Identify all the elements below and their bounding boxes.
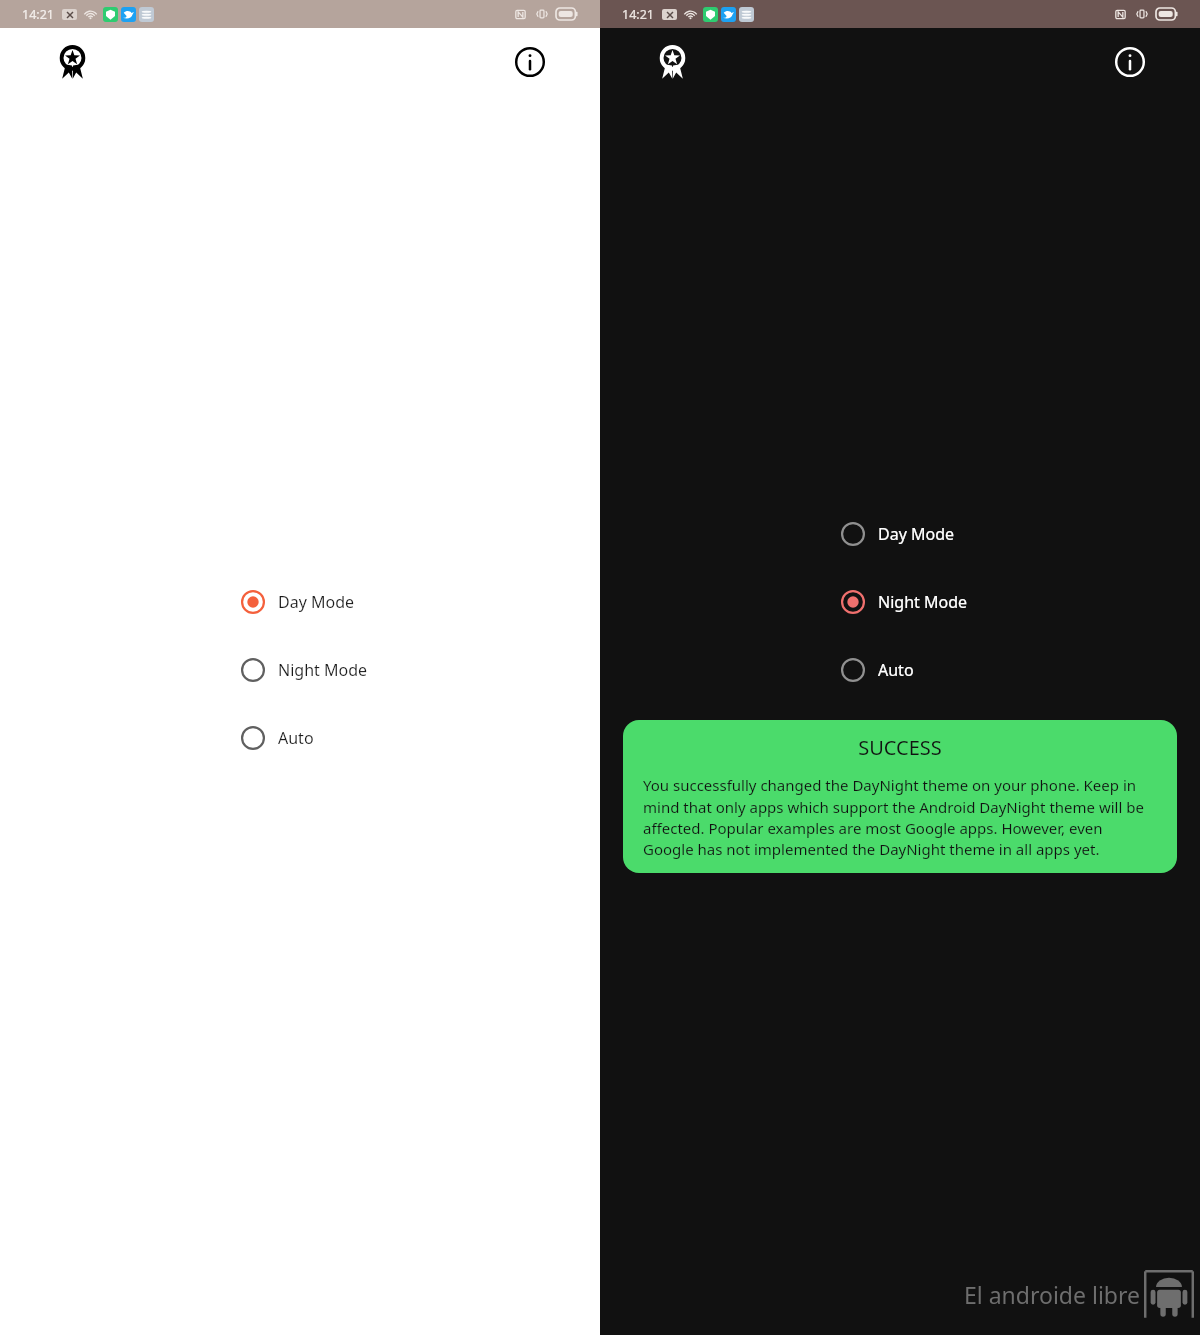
button[interactable]: Auto	[840, 653, 914, 687]
button[interactable]: Info	[508, 40, 552, 84]
button[interactable]: Auto	[240, 721, 314, 755]
staticText: SUCCESS	[643, 734, 1157, 761]
staticText: Auto	[278, 727, 314, 749]
button[interactable]: SUCCESS	[623, 720, 1177, 873]
button[interactable]: Night Mode	[240, 653, 368, 687]
button[interactable]: Info	[1108, 40, 1152, 84]
staticText: Day Mode	[878, 523, 955, 545]
staticText: 14:21	[622, 6, 654, 23]
staticText: El androide libre	[964, 1279, 1140, 1310]
button[interactable]: Award	[50, 40, 94, 84]
staticText: Night Mode	[278, 659, 368, 681]
staticText: Day Mode	[278, 591, 355, 613]
staticText: You successfully changed the DayNight th…	[643, 775, 1157, 859]
staticText: 14:21	[22, 6, 54, 23]
button[interactable]: Award	[650, 40, 694, 84]
button[interactable]: Day Mode	[840, 517, 955, 551]
button[interactable]: Day Mode	[240, 585, 355, 619]
staticText: Auto	[878, 659, 914, 681]
staticText: Night Mode	[878, 591, 968, 613]
button[interactable]: Night Mode	[840, 585, 968, 619]
